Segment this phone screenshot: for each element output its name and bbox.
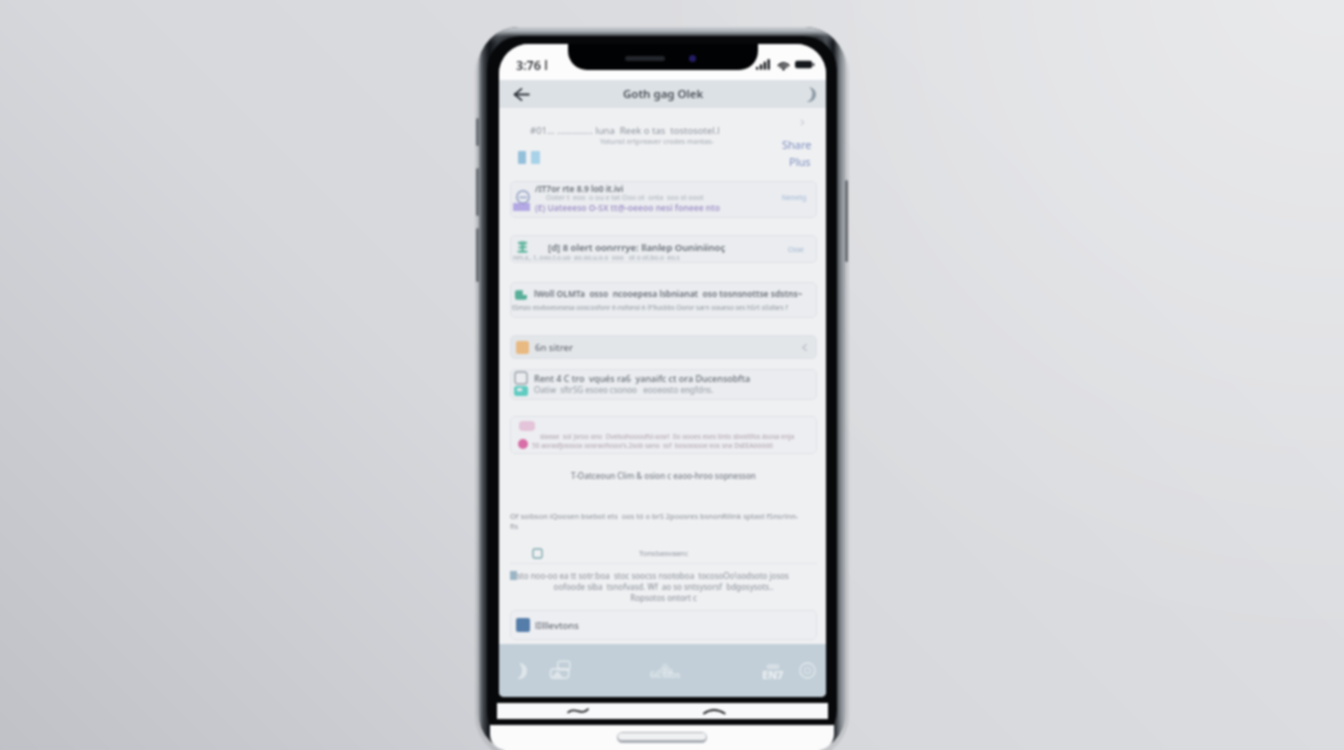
staticText: 6n sitrer <box>535 341 573 354</box>
staticText: lIlllevtons <box>535 619 579 632</box>
staticText: oofoode siba tsnofvasd. Wf ao so sntsyso… <box>510 581 817 592</box>
staticText: #01... .............. luna Reek o tas to… <box>530 124 720 137</box>
staticText: Tonsbasvaanc <box>639 548 689 558</box>
staticText: fis <box>510 521 519 531</box>
staticText: sto noo-oo ea tt sotr:boa stoc soocss ns… <box>517 570 789 581</box>
staticText: Goth gag Olek <box>623 86 704 102</box>
staticText: Yotunst ertpreaver crodes mantas- <box>600 137 714 147</box>
button[interactable]: Night mode <box>797 83 819 105</box>
staticText: 66.6lbs <box>650 668 681 680</box>
button[interactable]: Night mode <box>503 644 535 697</box>
staticText: Plus <box>789 154 811 169</box>
staticText: (E) Uateeeso O-SX tt@-oeeoo nesi foneee … <box>535 202 720 214</box>
staticText: Of soibson iQoosen bsebot ets oos tó o b… <box>510 511 799 521</box>
staticText: nm.a,. t..ooo.t.o.uo ao.oo.u.o.o ooo ot … <box>513 253 680 262</box>
staticText: Share <box>782 137 812 152</box>
button[interactable]: [d] 8 olert oonrrrye: llanlep Ouniniinoç <box>510 235 817 263</box>
staticText: Ropsotos ontort c <box>510 592 817 603</box>
button[interactable]: Language <box>757 644 789 697</box>
staticText: T-Oatceoun Clim & osion c eaoo-hroo sopn… <box>510 470 817 481</box>
staticText: Cisse <box>788 245 804 254</box>
button[interactable]: /IT7or rte 8.9 lo0 it.ivi <box>510 181 817 218</box>
staticText: Nenetg <box>782 193 807 203</box>
staticText: 50 aorasfjosssox oosraofosoo's.2sob sano… <box>532 441 774 450</box>
staticText: EN7 <box>762 667 784 682</box>
staticText: [d] 8 olert oonrrrye: llanlep Ouniniinoç <box>548 241 726 254</box>
staticText: Oatiw sftrSG esoeo csonoo eooeosto engfd… <box>534 384 714 395</box>
button[interactable]: Gallery <box>546 644 578 697</box>
staticText: 3:76 l <box>516 57 548 74</box>
button[interactable]: lIlllevtons <box>510 610 817 640</box>
staticText: tSmzo esvboesesesa ooscosfonr é-nsfonsi … <box>512 303 788 312</box>
button[interactable]: Back <box>508 81 534 107</box>
staticText: Rent 4 C tro vqués ra6 yanaifc ct ora Du… <box>534 372 751 384</box>
staticText: slaeae sol )sroo ono Dvelsohoooofsl-sosr… <box>540 432 795 441</box>
button[interactable]: slaeae sol )sroo ono Dvelsohoooofsl-sosr… <box>510 416 817 454</box>
button[interactable]: Weather <box>649 644 681 697</box>
staticText: lWoll OLMTa osso ncooepesa lsbnianat oso… <box>534 288 803 300</box>
button[interactable]: lWoll OLMTa osso ncooepesa lsbnianat oso… <box>510 282 817 318</box>
button[interactable]: Rent 4 C tro vqués ra6 yanaifc ct ora Du… <box>510 369 817 400</box>
button[interactable]: 6n sitrer <box>510 335 817 359</box>
button[interactable]: Settings <box>791 644 823 697</box>
staticText: Ooter t eoo o ou e tat Ooo ot onta soo s… <box>546 193 704 203</box>
staticText: /IT7or rte 8.9 lo0 it.ivi <box>535 183 624 195</box>
